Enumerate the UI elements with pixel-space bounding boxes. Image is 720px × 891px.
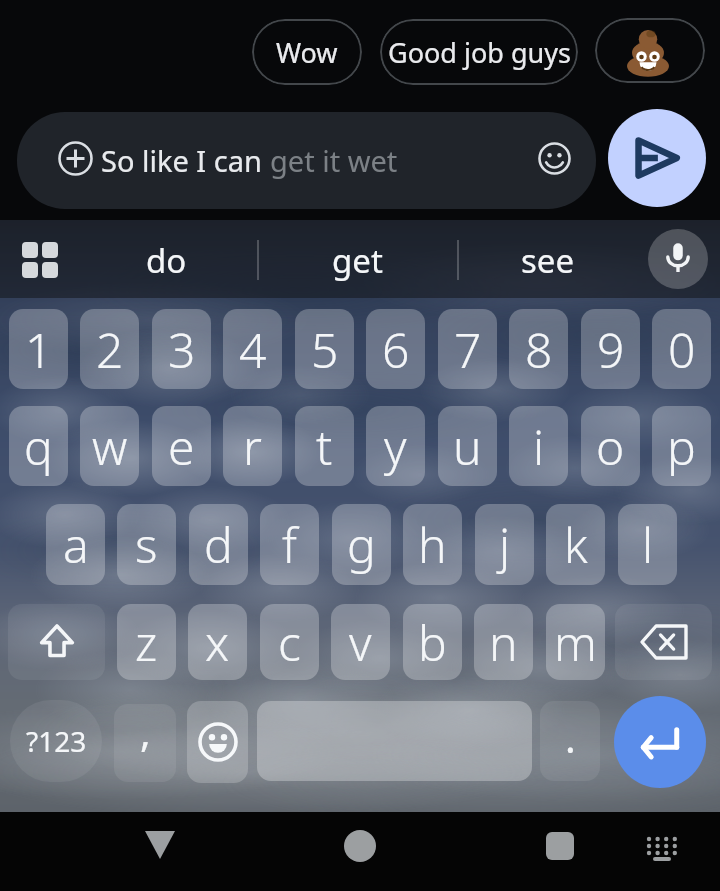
- button[interactable]: ,: [114, 700, 176, 778]
- staticText: t: [316, 414, 333, 479]
- button[interactable]: m: [546, 604, 605, 680]
- staticText: 6: [382, 317, 410, 382]
- staticText: Good job guys: [388, 34, 571, 71]
- staticText: m: [554, 610, 597, 675]
- staticText: Wow: [276, 34, 338, 71]
- staticText: b: [418, 610, 447, 675]
- button[interactable]: [645, 836, 679, 862]
- staticText: n: [489, 610, 518, 675]
- staticText: s: [135, 512, 158, 577]
- button[interactable]: n: [474, 604, 533, 680]
- button[interactable]: o: [581, 406, 640, 486]
- button[interactable]: [608, 109, 706, 207]
- button[interactable]: h: [403, 504, 462, 585]
- button[interactable]: 5: [295, 309, 354, 389]
- button[interactable]: t: [295, 406, 354, 486]
- button[interactable]: 7: [438, 309, 497, 389]
- staticText: get: [332, 238, 383, 283]
- button[interactable]: s: [117, 504, 176, 585]
- button[interactable]: [257, 701, 532, 781]
- staticText: do: [146, 238, 187, 283]
- staticText: 2: [96, 317, 124, 382]
- button[interactable]: r: [223, 406, 282, 486]
- staticText: f: [282, 512, 297, 577]
- staticText: a: [63, 512, 89, 577]
- staticText: i: [533, 414, 545, 479]
- staticText: 4: [239, 317, 267, 382]
- staticText: w: [92, 414, 128, 479]
- button[interactable]: 3: [152, 309, 211, 389]
- button[interactable]: see: [488, 222, 608, 298]
- staticText: 7: [454, 317, 482, 382]
- button[interactable]: [615, 604, 712, 680]
- staticText: o: [596, 414, 625, 479]
- button[interactable]: [8, 604, 105, 680]
- staticText: 9: [597, 317, 625, 382]
- button[interactable]: do: [106, 222, 226, 298]
- staticText: v: [349, 610, 372, 675]
- staticText: p: [667, 414, 696, 479]
- button[interactable]: [648, 229, 708, 289]
- button[interactable]: So like I can: [17, 112, 596, 209]
- staticText: 1: [25, 317, 53, 382]
- button[interactable]: 8: [509, 309, 568, 389]
- button[interactable]: a: [46, 504, 105, 585]
- button[interactable]: [595, 18, 705, 83]
- button[interactable]: .: [540, 701, 600, 781]
- button[interactable]: [614, 696, 706, 788]
- staticText: get it wet: [270, 141, 398, 180]
- button[interactable]: u: [438, 406, 497, 486]
- button[interactable]: [22, 242, 58, 278]
- button[interactable]: j: [475, 504, 534, 585]
- staticText: .: [565, 710, 576, 764]
- staticText: k: [564, 512, 588, 577]
- staticText: ,: [140, 704, 151, 758]
- staticText: d: [204, 512, 233, 577]
- button[interactable]: c: [260, 604, 319, 680]
- button[interactable]: g: [332, 504, 391, 585]
- button[interactable]: y: [366, 406, 425, 486]
- staticText: see: [521, 238, 575, 283]
- button[interactable]: q: [9, 406, 68, 486]
- button[interactable]: get: [297, 222, 417, 298]
- staticText: h: [418, 512, 447, 577]
- button[interactable]: b: [403, 604, 462, 680]
- button[interactable]: 2: [80, 309, 139, 389]
- button[interactable]: Good job guys: [380, 19, 578, 85]
- button[interactable]: [145, 831, 175, 859]
- staticText: q: [24, 414, 53, 479]
- button[interactable]: [540, 701, 600, 781]
- button[interactable]: ?123: [10, 700, 102, 782]
- button[interactable]: 9: [581, 309, 640, 389]
- button[interactable]: [114, 704, 176, 782]
- staticText: 3: [168, 317, 196, 382]
- button[interactable]: w: [80, 406, 139, 486]
- button[interactable]: f: [260, 504, 319, 585]
- staticText: j: [499, 512, 511, 577]
- button[interactable]: [187, 701, 248, 783]
- staticText: u: [453, 414, 482, 479]
- button[interactable]: i: [509, 406, 568, 486]
- button[interactable]: p: [652, 406, 711, 486]
- button[interactable]: Wow: [252, 19, 362, 85]
- button[interactable]: e: [152, 406, 211, 486]
- button[interactable]: 6: [366, 309, 425, 389]
- button[interactable]: 1: [9, 309, 68, 389]
- button[interactable]: d: [189, 504, 248, 585]
- button[interactable]: [546, 832, 574, 860]
- staticText: 8: [525, 317, 553, 382]
- staticText: y: [384, 414, 407, 479]
- staticText: z: [135, 610, 158, 675]
- staticText: ?123: [26, 722, 87, 760]
- button[interactable]: x: [188, 604, 247, 680]
- staticText: 0: [668, 317, 696, 382]
- button[interactable]: 4: [223, 309, 282, 389]
- button[interactable]: [344, 830, 376, 862]
- button[interactable]: z: [117, 604, 176, 680]
- staticText: So like I can: [101, 141, 270, 180]
- button[interactable]: l: [618, 504, 677, 585]
- button[interactable]: k: [546, 504, 605, 585]
- button[interactable]: 0: [652, 309, 711, 389]
- staticText: c: [278, 610, 301, 675]
- button[interactable]: v: [331, 604, 390, 680]
